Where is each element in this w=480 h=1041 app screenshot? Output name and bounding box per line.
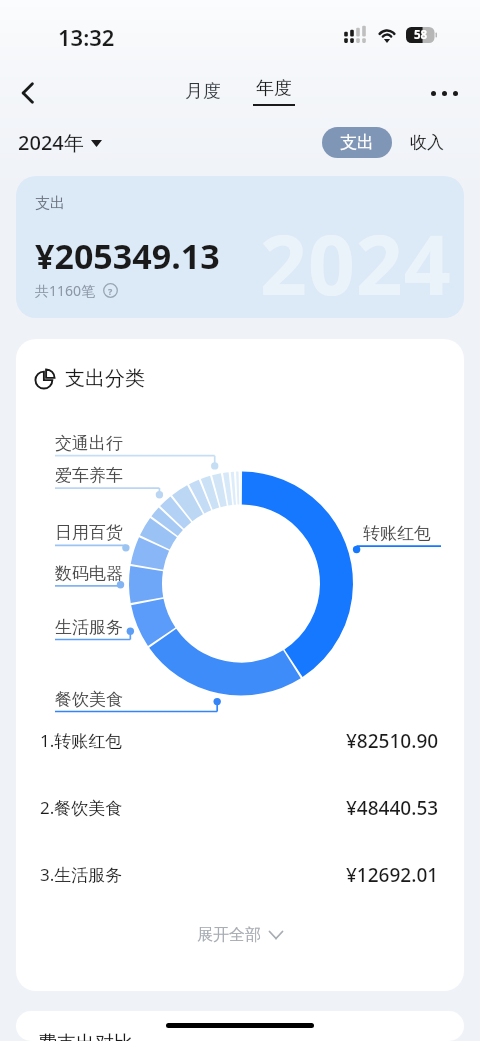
button[interactable]: 展开全部 <box>16 918 464 952</box>
button[interactable]: 收入 <box>404 127 450 158</box>
staticText: 生活服务 <box>55 617 123 638</box>
staticText: 爱车养车 <box>55 465 123 486</box>
staticText: 日用百货 <box>55 522 123 543</box>
staticText: 共1160笔 <box>35 281 96 300</box>
button[interactable]: 2.餐饮美食 <box>16 774 464 841</box>
staticText: 展开全部 <box>197 925 261 945</box>
staticText: 数码电器 <box>55 563 123 584</box>
staticText: 交通出行 <box>55 433 123 454</box>
staticText: 3.生活服务 <box>40 863 123 886</box>
button[interactable]: More options <box>422 71 466 115</box>
button[interactable]: 3.生活服务 <box>16 841 464 908</box>
staticText: 月度 <box>185 80 221 103</box>
staticText: 2024年 <box>18 129 84 156</box>
button[interactable]: Info <box>103 283 118 298</box>
staticText: ¥12692.01 <box>346 862 439 888</box>
button[interactable]: 1.转账红包 <box>16 707 464 774</box>
button[interactable]: 年度 <box>244 70 304 113</box>
staticText: 费支出对比 <box>38 1031 133 1041</box>
staticText: 转账红包 <box>363 523 431 544</box>
staticText: ? <box>108 285 113 297</box>
button[interactable]: 月度 <box>176 73 230 110</box>
staticText: 13:32 <box>58 22 115 52</box>
staticText: 支出分类 <box>65 366 145 391</box>
staticText: ¥82510.90 <box>346 728 439 754</box>
staticText: ¥48440.53 <box>346 795 439 821</box>
staticText: 年度 <box>256 77 292 100</box>
staticText: 收入 <box>410 132 444 153</box>
staticText: 支出 <box>35 194 65 213</box>
staticText: 2024 <box>260 207 452 318</box>
staticText: 2.餐饮美食 <box>40 796 123 819</box>
button[interactable]: Back <box>6 71 50 115</box>
staticText: 支出 <box>340 132 374 153</box>
button[interactable]: 支出 <box>322 127 392 158</box>
staticText: ¥205349.13 <box>35 233 220 279</box>
button[interactable]: 2024年 <box>14 125 106 160</box>
button[interactable]: 2024 <box>16 176 464 318</box>
staticText: 58 <box>414 27 428 43</box>
staticText: 餐饮美食 <box>55 689 123 710</box>
staticText: 1.转账红包 <box>40 729 123 752</box>
